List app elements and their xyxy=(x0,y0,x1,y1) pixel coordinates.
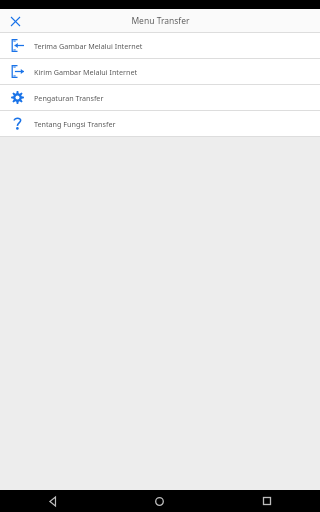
button[interactable]: Back xyxy=(0,490,106,512)
staticText: Pengaturan Transfer xyxy=(34,93,104,103)
staticText: Kirim Gambar Melalui Internet xyxy=(34,67,138,77)
button[interactable]: Recent apps xyxy=(213,490,320,512)
button[interactable]: Pengaturan Transfer xyxy=(0,85,320,110)
staticText: Tentang Fungsi Transfer xyxy=(34,119,116,129)
staticText: Terima Gambar Melalui Internet xyxy=(34,41,143,51)
button[interactable]: Terima Gambar Melalui Internet xyxy=(0,33,320,58)
staticText: Menu Transfer xyxy=(131,15,190,27)
button[interactable]: Tentang Fungsi Transfer xyxy=(0,111,320,136)
button[interactable]: Close xyxy=(6,12,24,30)
button[interactable]: Kirim Gambar Melalui Internet xyxy=(0,59,320,84)
button[interactable]: Home xyxy=(106,490,213,512)
